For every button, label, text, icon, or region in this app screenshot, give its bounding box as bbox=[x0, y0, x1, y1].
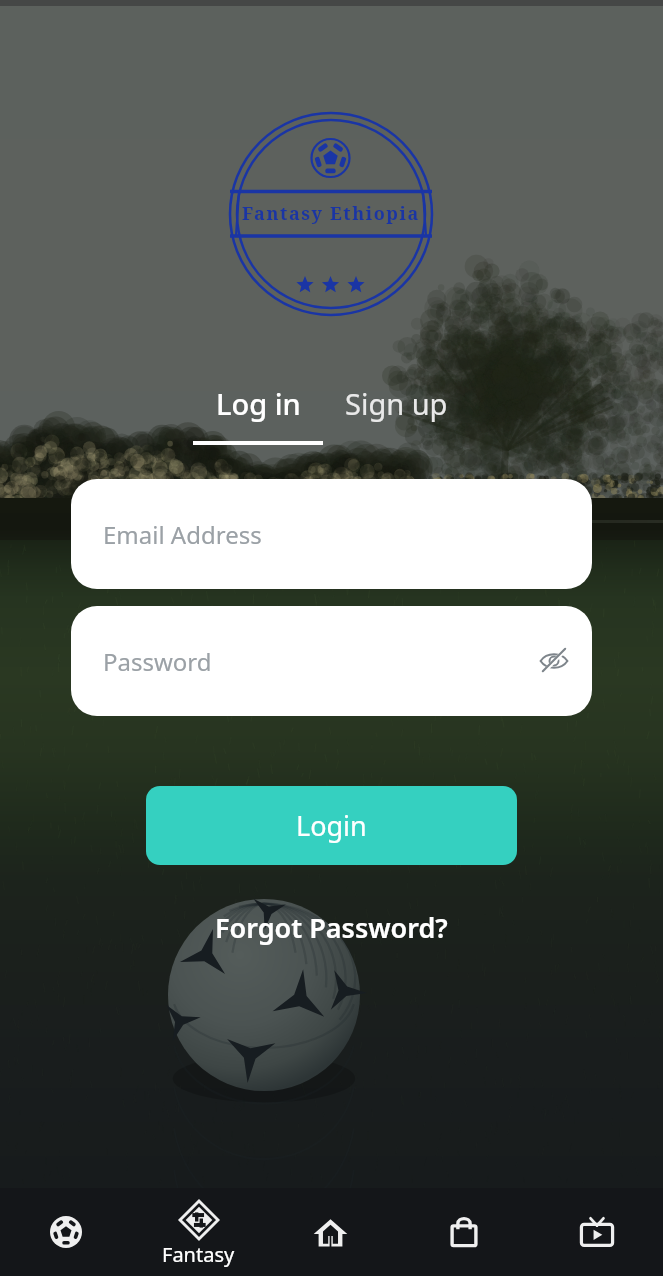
button[interactable]: Email Address bbox=[71, 479, 592, 589]
button[interactable]: Show password bbox=[538, 645, 570, 677]
button[interactable]: Log in bbox=[193, 384, 323, 445]
staticText: Log in bbox=[216, 384, 301, 423]
button[interactable]: Matches bbox=[0, 1188, 132, 1276]
button[interactable]: Sign up bbox=[336, 384, 456, 424]
button[interactable]: Password bbox=[71, 606, 592, 716]
button[interactable]: Home bbox=[264, 1188, 397, 1276]
staticText: Fantasy Ethiopia bbox=[242, 201, 420, 226]
staticText: Email Address bbox=[103, 518, 262, 551]
button[interactable]: Login bbox=[146, 786, 517, 865]
staticText: Sign up bbox=[345, 384, 448, 423]
button[interactable]: Forgot Password? bbox=[215, 909, 448, 946]
button[interactable]: Fantasy bbox=[132, 1188, 264, 1276]
button[interactable]: Shop bbox=[397, 1188, 530, 1276]
staticText: Password bbox=[103, 645, 212, 678]
staticText: Fantasy bbox=[162, 1241, 235, 1268]
button[interactable]: Live TV bbox=[530, 1188, 663, 1276]
staticText: Login bbox=[296, 807, 367, 844]
